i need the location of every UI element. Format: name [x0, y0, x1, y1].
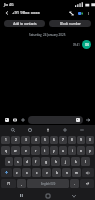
button[interactable]: Send — [84, 116, 92, 124]
staticText: s — [17, 160, 19, 164]
button[interactable]: Expand — [78, 126, 86, 134]
button[interactable]: , — [17, 179, 26, 188]
button[interactable]: h — [51, 157, 60, 166]
button[interactable]: 3 — [21, 136, 30, 144]
staticText: c — [36, 171, 38, 175]
button[interactable]: l — [81, 157, 90, 166]
button[interactable]: e — [21, 146, 30, 155]
staticText: v — [46, 171, 48, 175]
staticText: Jio 4G — [4, 2, 14, 7]
button[interactable]: Back — [3, 9, 11, 17]
button[interactable]: Search — [9, 126, 17, 134]
staticText: r — [35, 149, 37, 153]
staticText: e — [25, 149, 27, 153]
button[interactable]: Home — [43, 191, 52, 200]
staticText: 0 — [89, 138, 91, 142]
staticText: 6 — [53, 138, 55, 142]
button[interactable]: Enter — [80, 179, 94, 188]
button[interactable]: Stickers — [26, 126, 34, 134]
button[interactable]: Add to contacts — [4, 20, 45, 27]
button[interactable]: Add — [19, 116, 27, 124]
button[interactable]: f — [32, 157, 40, 166]
button[interactable]: y — [50, 146, 58, 155]
button[interactable]: . — [70, 179, 79, 188]
button[interactable]: z — [13, 168, 21, 177]
staticText: . — [74, 182, 75, 186]
staticText: 09:41 — [73, 43, 80, 47]
button[interactable]: u — [59, 146, 67, 155]
staticText: , — [21, 182, 22, 186]
button[interactable]: n — [62, 168, 71, 177]
button[interactable]: 2 — [11, 136, 20, 144]
button[interactable]: k — [71, 157, 80, 166]
staticText: 9 — [80, 138, 82, 142]
button[interactable]: Block number — [49, 20, 91, 27]
staticText: l — [85, 160, 86, 164]
button[interactable]: m — [72, 168, 81, 177]
staticText: g — [45, 160, 47, 164]
staticText: 8 — [71, 138, 73, 142]
button[interactable]: OK — [82, 40, 91, 49]
staticText: z — [16, 171, 18, 175]
button[interactable]: Recents — [17, 191, 26, 200]
button[interactable]: b — [52, 168, 61, 177]
staticText: Saturday, 24 January 2025 — [29, 33, 66, 37]
button[interactable]: d — [23, 157, 31, 166]
button[interactable]: r — [31, 146, 40, 155]
staticText: 1 — [5, 138, 7, 142]
button[interactable]: Call — [67, 9, 76, 18]
button[interactable]: x — [22, 168, 31, 177]
button[interactable]: 8 — [68, 136, 76, 144]
staticText: p — [89, 149, 91, 153]
button[interactable]: t — [41, 146, 49, 155]
button[interactable]: c — [32, 168, 41, 177]
staticText: 5 — [44, 138, 46, 142]
button[interactable]: Gallery — [3, 116, 11, 124]
staticText: x — [26, 171, 28, 175]
button[interactable]: Video call — [76, 9, 85, 18]
staticText: +91 98xx xxxx — [12, 10, 40, 16]
staticText: u — [62, 149, 64, 153]
button[interactable]: 5 — [41, 136, 49, 144]
button[interactable]: More options — [85, 10, 92, 17]
button[interactable]: g — [41, 157, 50, 166]
button[interactable]: i — [68, 146, 76, 155]
button[interactable]: a — [5, 157, 13, 166]
staticText: n — [66, 171, 68, 175]
staticText: o — [80, 149, 82, 153]
staticText: j — [65, 160, 66, 164]
button[interactable]: Shift — [1, 168, 12, 177]
button[interactable]: 9 — [77, 136, 85, 144]
button[interactable]: Backspace — [82, 168, 94, 177]
button[interactable]: j — [61, 157, 70, 166]
button[interactable]: Settings — [61, 126, 69, 134]
staticText: English (US) — [41, 182, 56, 186]
staticText: k — [75, 160, 77, 164]
staticText: t — [44, 149, 46, 153]
staticText: Block number — [60, 22, 81, 26]
button[interactable]: English (US) — [27, 179, 69, 188]
staticText: a — [8, 160, 10, 164]
button[interactable]: 4 — [31, 136, 40, 144]
button[interactable]: ?1 — [1, 179, 16, 188]
button[interactable]: s — [14, 157, 22, 166]
button[interactable]: w — [11, 146, 20, 155]
staticText: OK — [85, 43, 89, 47]
button[interactable] — [28, 116, 83, 124]
button[interactable]: 7 — [59, 136, 67, 144]
button[interactable]: Camera — [11, 116, 19, 124]
staticText: 3 — [25, 138, 27, 142]
staticText: h — [55, 160, 57, 164]
button[interactable]: 6 — [50, 136, 58, 144]
button[interactable]: p — [86, 146, 94, 155]
staticText: 4 — [35, 138, 37, 142]
button[interactable]: 0 — [86, 136, 94, 144]
button[interactable]: v — [42, 168, 51, 177]
button[interactable]: q — [1, 146, 10, 155]
button[interactable]: Voice input — [44, 126, 52, 134]
button[interactable]: o — [77, 146, 85, 155]
button[interactable]: Back — [69, 191, 78, 200]
staticText: 2 — [15, 138, 17, 142]
button[interactable]: 1 — [1, 136, 10, 144]
staticText: d — [26, 160, 28, 164]
